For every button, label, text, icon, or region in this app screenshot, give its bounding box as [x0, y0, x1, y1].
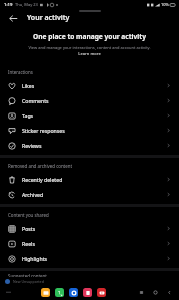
staticText: Tags: [22, 112, 34, 119]
staticText: 1:19: [4, 2, 13, 8]
staticText: Comments: [22, 97, 49, 104]
button[interactable]: App: [97, 288, 106, 297]
staticText: Archived: [22, 191, 44, 198]
button[interactable]: App: [55, 288, 64, 297]
staticText: Thu, May 23: [15, 2, 38, 7]
staticText: Sticker responses: [22, 127, 65, 134]
staticText: Posts: [22, 225, 36, 232]
staticText: Recently deleted: [22, 176, 63, 183]
button[interactable]: Comments: [0, 93, 179, 108]
staticText: Removed and archived content: [8, 163, 72, 169]
button[interactable]: Home: [151, 288, 160, 297]
button[interactable]: Highlights: [0, 251, 179, 266]
button[interactable]: Learn more: [78, 51, 101, 56]
staticText: Suggested content: [8, 273, 47, 277]
button[interactable]: Likes: [0, 78, 179, 93]
button[interactable]: Reviews: [0, 138, 179, 153]
staticText: Highlights: [22, 255, 48, 262]
staticText: New Unsupported: [13, 279, 44, 284]
button[interactable]: Reels: [0, 236, 179, 251]
staticText: Interactions: [8, 69, 33, 75]
staticText: Reviews: [22, 142, 42, 149]
button[interactable]: App: [41, 288, 50, 297]
staticText: Likes: [22, 82, 35, 89]
button[interactable]: Recently deleted: [0, 172, 179, 187]
staticText: 10%: [161, 2, 169, 7]
button[interactable]: Tags: [0, 108, 179, 123]
staticText: Your activity: [27, 13, 70, 23]
button[interactable]: App: [83, 288, 92, 297]
button[interactable]: Archived: [0, 187, 179, 202]
staticText: Reels: [22, 240, 35, 247]
staticText: One place to manage your activity: [33, 32, 146, 41]
button[interactable]: Back: [5, 10, 21, 26]
staticText: Content you shared: [8, 212, 49, 218]
button[interactable]: Posts: [0, 221, 179, 236]
staticText: Learn more: [78, 51, 101, 56]
button[interactable]: Sticker responses: [0, 123, 179, 138]
button[interactable]: App: [69, 288, 78, 297]
button[interactable]: Back: [165, 288, 174, 297]
button[interactable]: Recent apps: [137, 288, 146, 297]
staticText: View and manage your interactions, conte…: [28, 45, 151, 50]
